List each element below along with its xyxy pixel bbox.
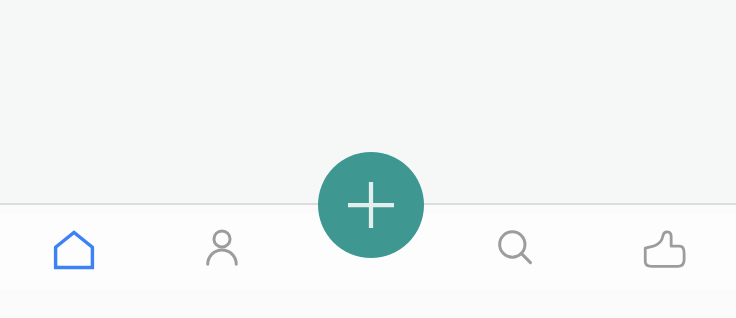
button[interactable]: Home (0, 205, 148, 318)
button[interactable]: Like (589, 205, 736, 318)
button[interactable]: Search (442, 205, 589, 318)
button[interactable]: Add (318, 152, 424, 258)
button[interactable]: Profile (148, 205, 295, 318)
